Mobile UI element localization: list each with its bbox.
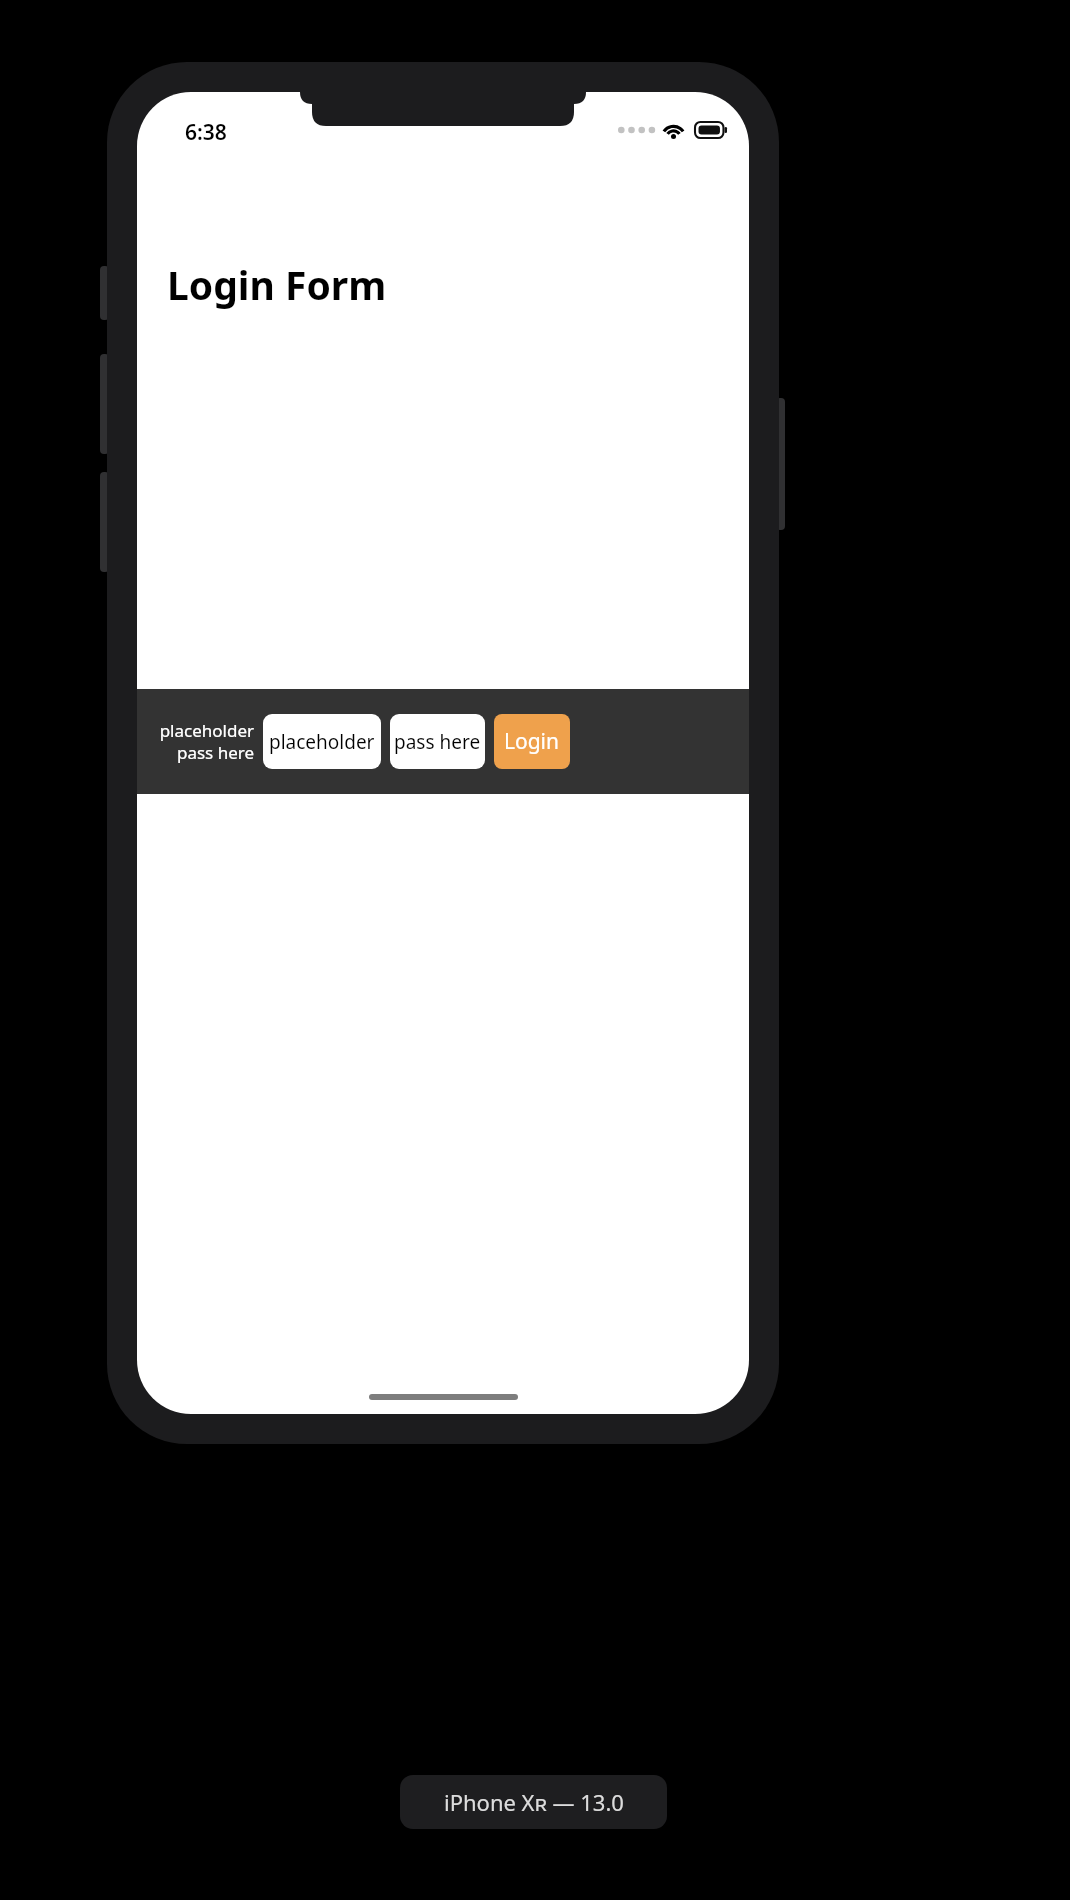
- other: Wi-Fi: [661, 121, 686, 139]
- staticText: iPhone Xʀ — 13.0: [444, 1787, 624, 1817]
- staticText: Login Form: [167, 258, 387, 311]
- staticText: placeholder: [269, 729, 375, 755]
- button[interactable]: pass here: [390, 714, 485, 769]
- staticText: pass here: [394, 729, 481, 755]
- button[interactable]: Login: [494, 714, 570, 769]
- button[interactable]: placeholder: [263, 714, 381, 769]
- other: Cellular signal: [618, 124, 653, 136]
- staticText: 6:38: [185, 118, 227, 147]
- other: Battery: [695, 122, 727, 138]
- button[interactable]: iPhone Xʀ — 13.0: [400, 1775, 667, 1829]
- staticText: Login: [504, 727, 560, 756]
- staticText: placeholder pass here: [153, 719, 254, 764]
